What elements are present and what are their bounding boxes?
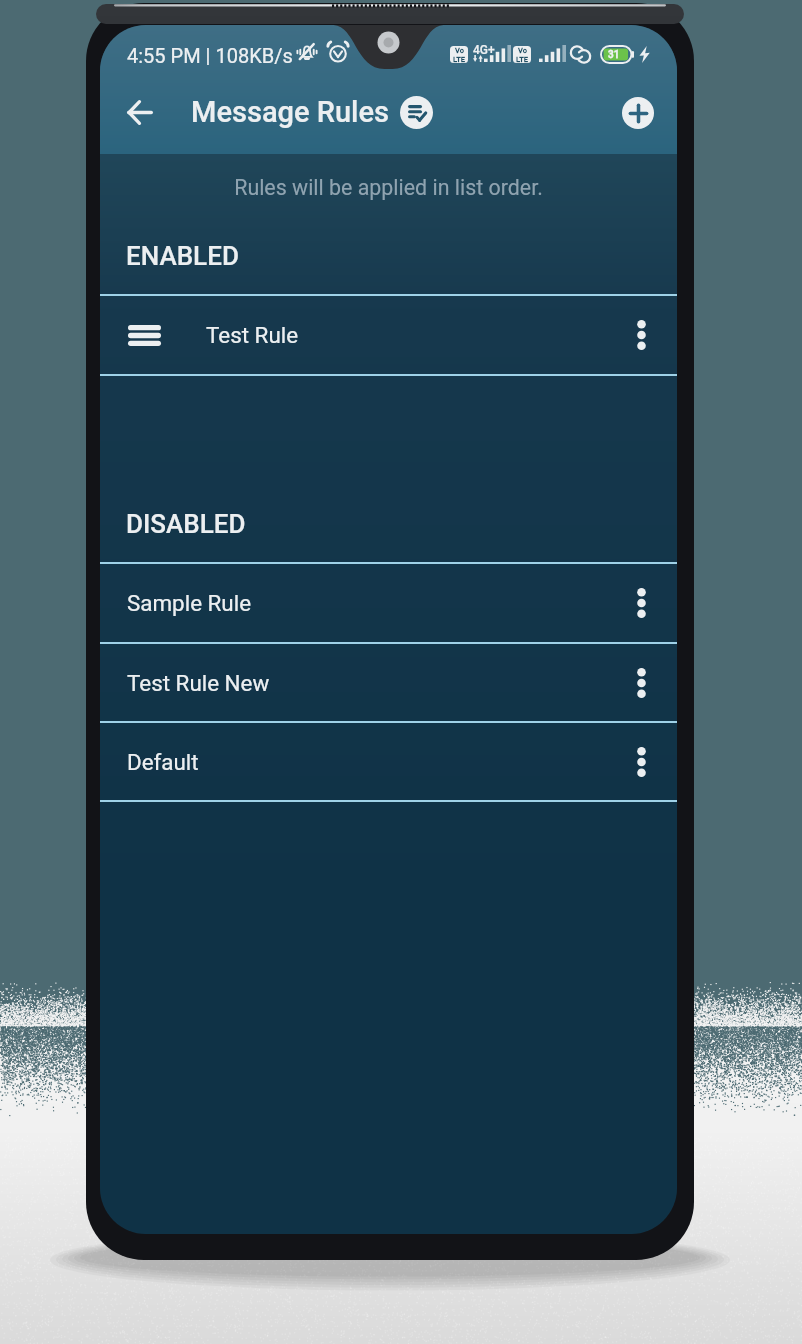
staticText: Sample Rule xyxy=(127,590,252,616)
button[interactable]: More options xyxy=(605,723,677,801)
staticText: Vo xyxy=(455,46,464,55)
staticText: 31 xyxy=(608,49,620,61)
staticText: Rules will be applied in list order. xyxy=(100,175,677,200)
button[interactable]: More options xyxy=(605,296,677,374)
staticText: Test Rule xyxy=(206,322,299,348)
staticText: Vo xyxy=(518,46,527,55)
staticText: 4:55 PM | 108KB/s xyxy=(127,44,293,67)
staticText: Message Rules xyxy=(191,95,390,129)
button[interactable]: More options xyxy=(605,644,677,722)
staticText: DISABLED xyxy=(126,509,246,539)
staticText: 4G+ xyxy=(473,43,495,57)
button[interactable]: More options xyxy=(605,564,677,642)
staticText: LTE xyxy=(516,55,529,63)
button[interactable]: Rule list xyxy=(400,96,433,129)
staticText: LTE xyxy=(453,55,466,63)
button[interactable]: Add rule xyxy=(622,97,654,129)
button[interactable]: Back xyxy=(117,90,162,135)
button[interactable]: Sample Rule xyxy=(100,564,677,642)
staticText: ENABLED xyxy=(126,241,239,271)
button[interactable]: Default xyxy=(100,723,677,801)
button[interactable]: Test Rule New xyxy=(100,644,677,722)
staticText: Default xyxy=(127,749,199,775)
button[interactable]: Test Rule xyxy=(100,296,677,374)
staticText: Test Rule New xyxy=(127,670,270,696)
